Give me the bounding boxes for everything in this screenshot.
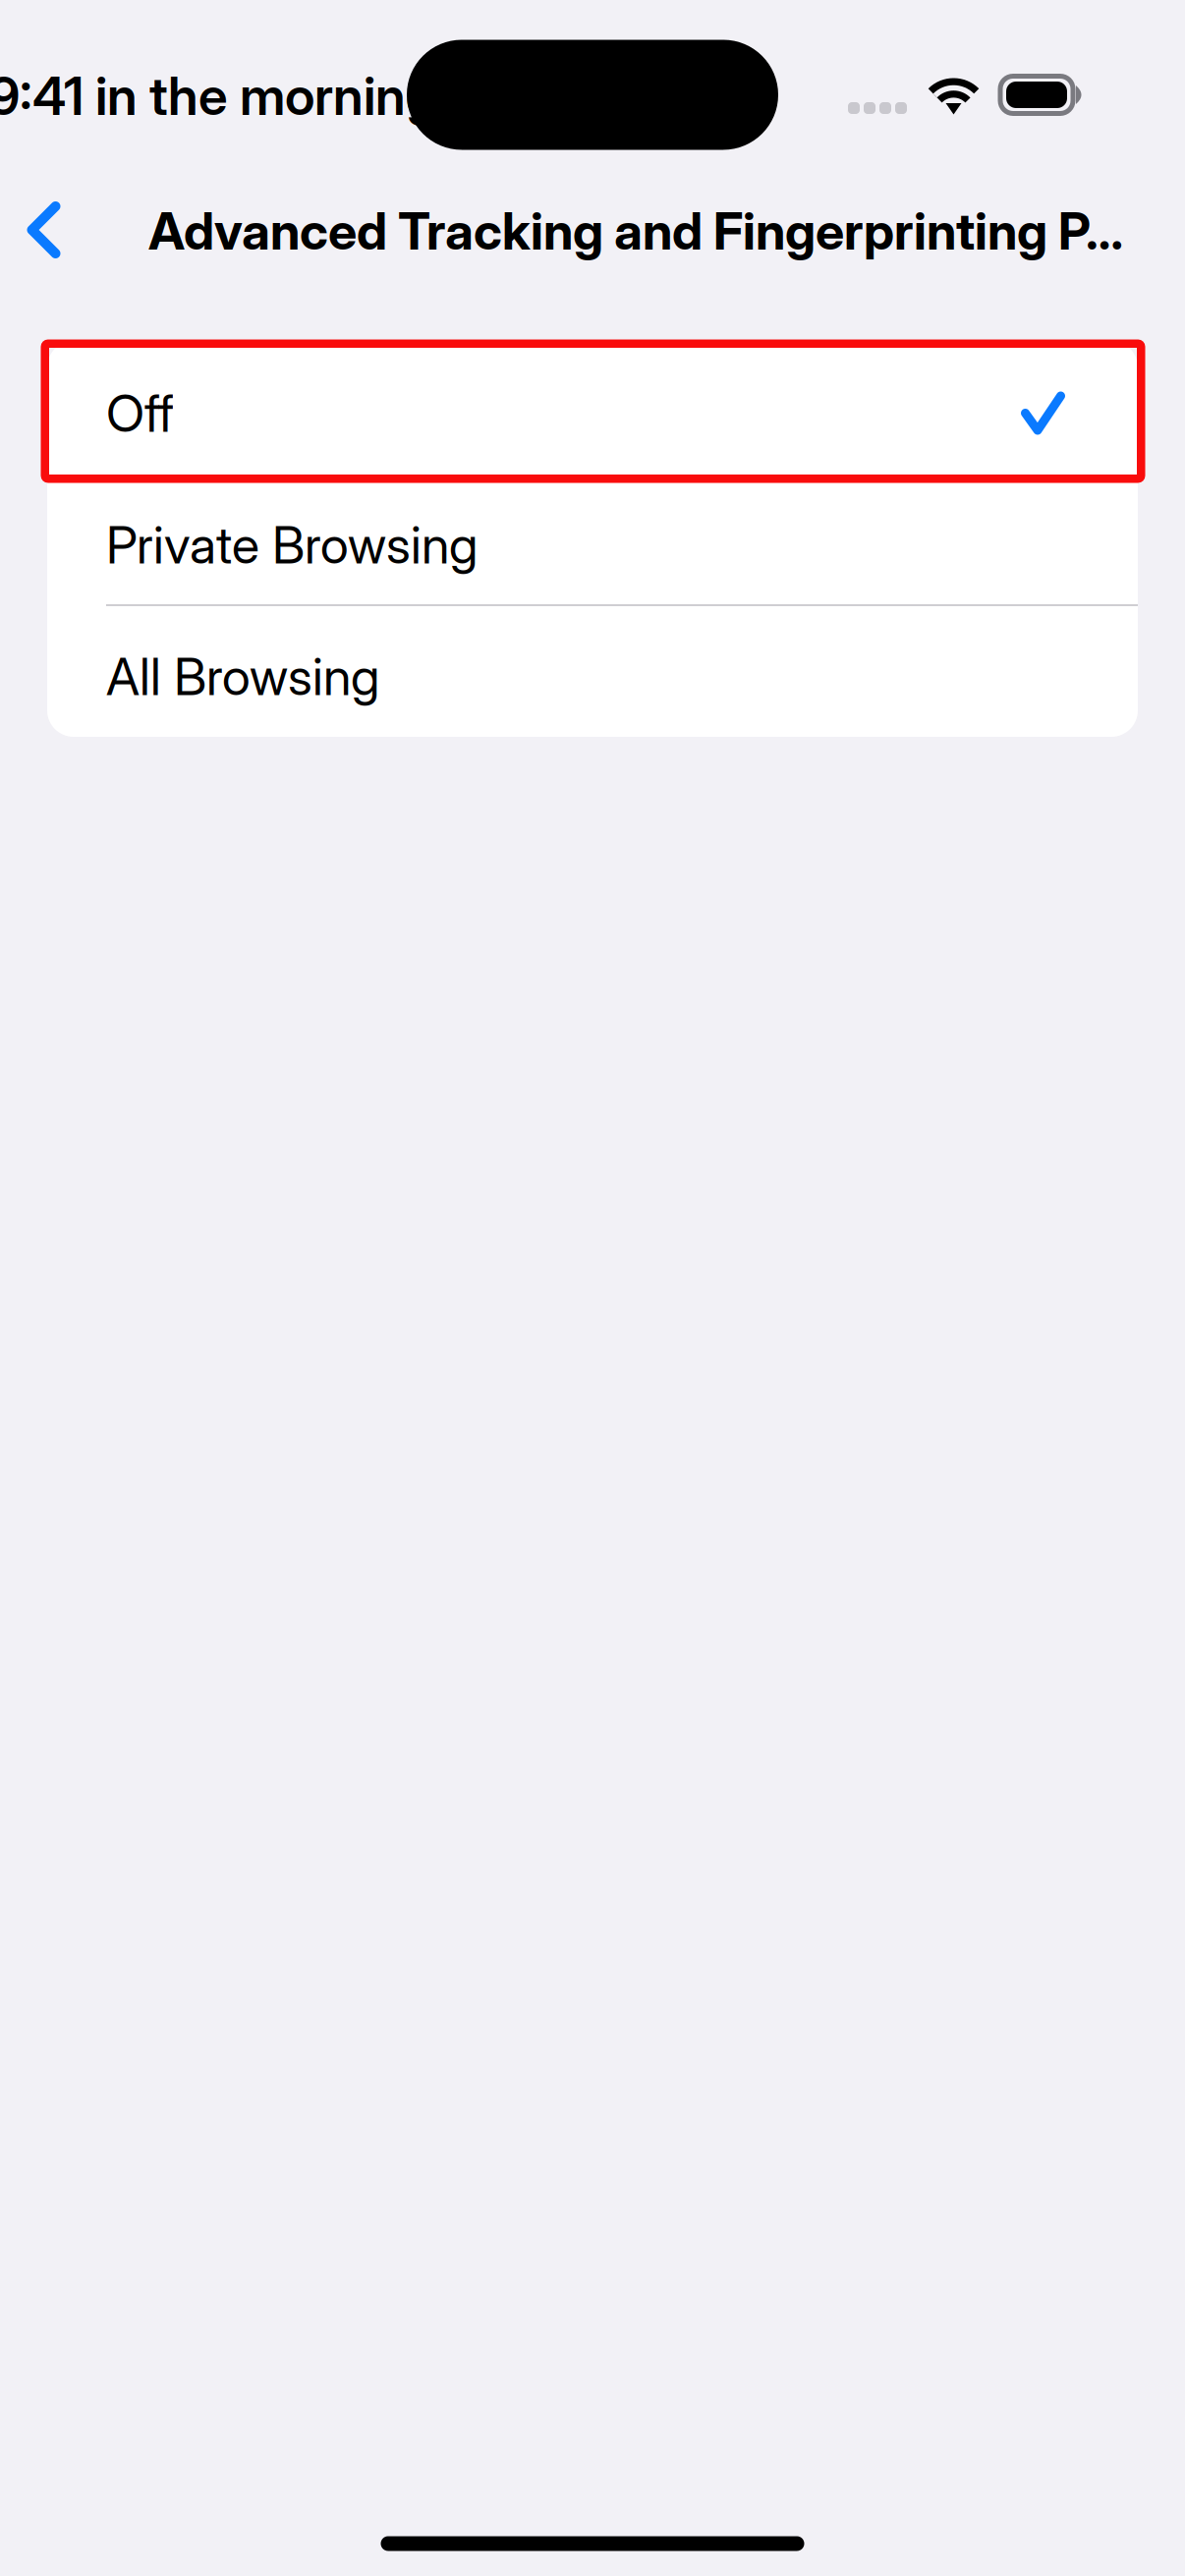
staticText: Off [106, 382, 174, 444]
button[interactable]: Off [47, 341, 1138, 473]
staticText: All Browsing [106, 645, 379, 707]
staticText: Private Browsing [106, 514, 478, 576]
staticText: 9:41 in the morning [0, 64, 436, 127]
button[interactable]: All Browsing [47, 605, 1138, 736]
staticText: Advanced Tracking and Fingerprinting P… [148, 200, 1123, 262]
button[interactable]: Private Browsing [47, 473, 1138, 605]
button[interactable]: Back [0, 175, 99, 285]
